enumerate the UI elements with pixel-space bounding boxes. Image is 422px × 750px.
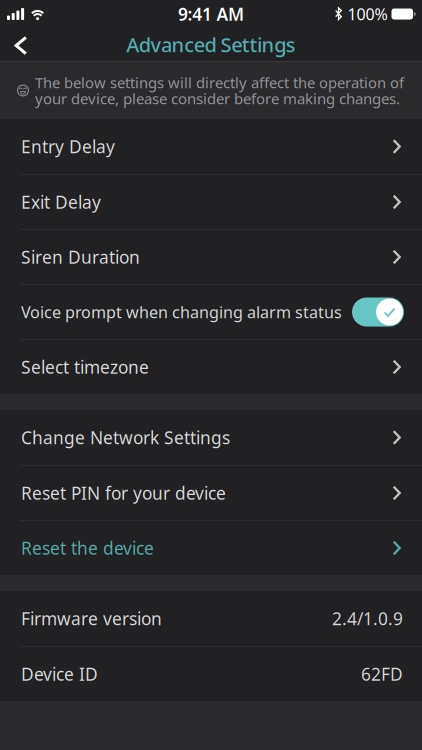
staticText: 100% <box>347 3 387 25</box>
staticText: Entry Delay <box>21 135 115 158</box>
staticText: Exit Delay <box>21 190 101 213</box>
button[interactable]: Siren Duration <box>0 230 422 284</box>
staticText: Select timezone <box>21 355 149 378</box>
button[interactable]: Exit Delay <box>0 175 422 229</box>
staticText: Reset the device <box>21 536 154 559</box>
staticText: Siren Duration <box>21 245 140 268</box>
button[interactable]: Reset PIN for your device <box>0 466 422 520</box>
staticText: 9:41 AM <box>178 2 244 25</box>
button[interactable]: Reset the device <box>0 521 422 575</box>
button[interactable]: Entry Delay <box>0 119 422 174</box>
staticText: Reset PIN for your device <box>21 481 226 504</box>
button[interactable]: Voice prompt when changing alarm status <box>0 285 422 339</box>
staticText: Advanced Settings <box>126 31 296 58</box>
button[interactable]: Change Network Settings <box>0 410 422 465</box>
staticText: your device, please consider before maki… <box>35 89 400 108</box>
staticText: Device ID <box>21 662 98 685</box>
staticText: Voice prompt when changing alarm status <box>21 301 342 323</box>
staticText: 2.4/1.0.9 <box>332 607 403 630</box>
staticText: 62FD <box>361 662 403 685</box>
staticText: The below settings will directly affect … <box>35 73 404 92</box>
staticText: Change Network Settings <box>21 426 230 449</box>
button[interactable]: Select timezone <box>0 340 422 394</box>
staticText: Firmware version <box>21 607 162 630</box>
button[interactable]: Back <box>0 28 38 61</box>
